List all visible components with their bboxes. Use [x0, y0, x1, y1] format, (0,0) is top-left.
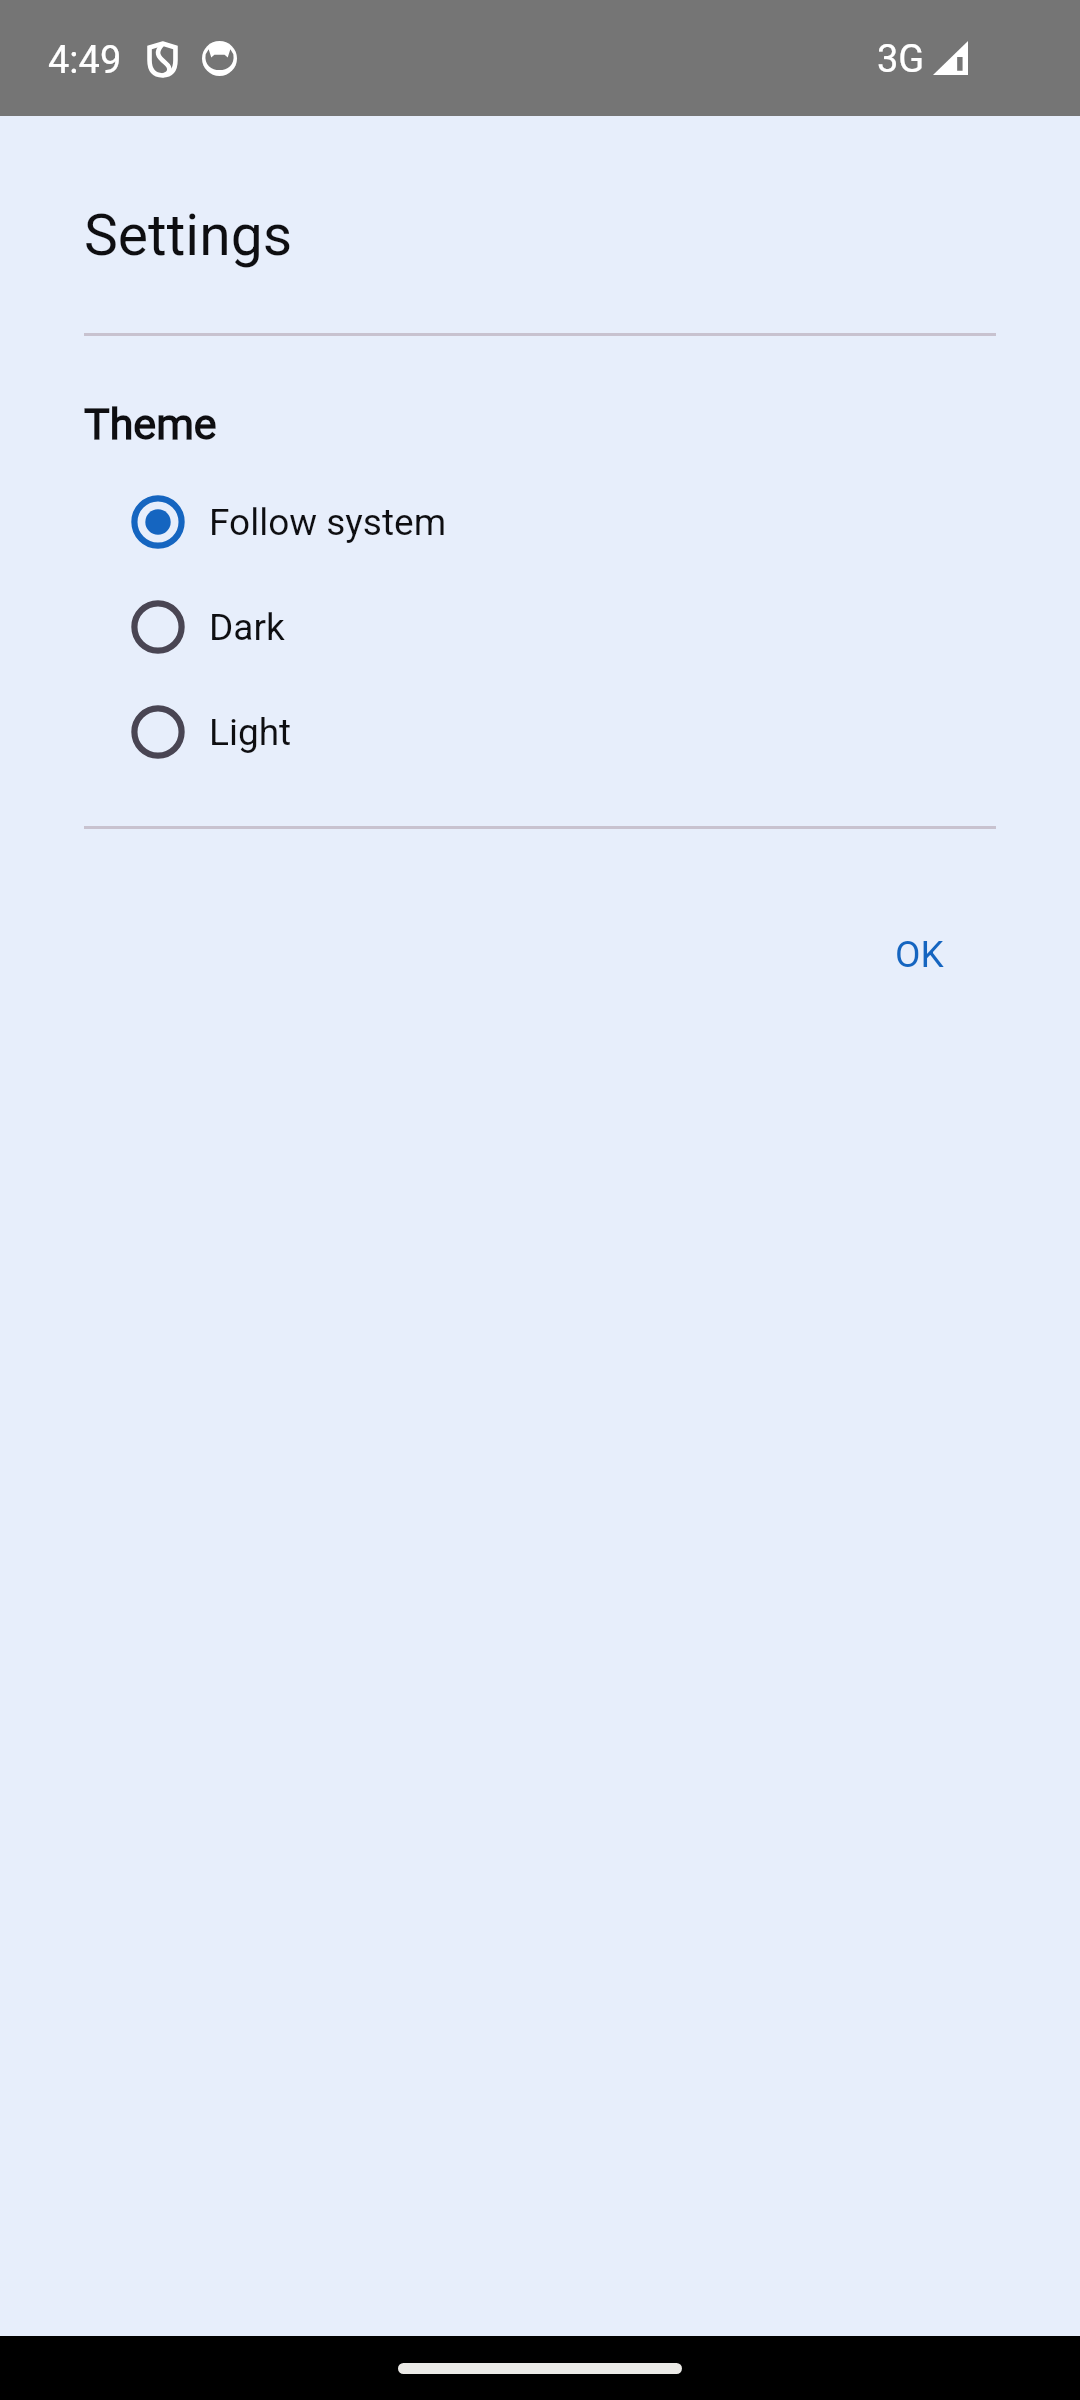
staticText: 3G [877, 37, 925, 82]
staticText: Theme [84, 399, 217, 449]
other: Privacy shield [147, 41, 178, 78]
staticText: Settings [84, 202, 293, 269]
staticText: Follow system [209, 501, 447, 544]
button[interactable]: Light [0, 679, 1080, 784]
other: Mobile signal [933, 41, 968, 75]
button[interactable]: Follow system [0, 469, 1080, 574]
staticText: 4:49 [48, 38, 122, 83]
other: Home [398, 2363, 682, 2374]
staticText: Dark [209, 606, 285, 649]
button[interactable]: OK [873, 911, 966, 998]
other: App notification [202, 41, 237, 76]
staticText: OK [895, 933, 944, 976]
staticText: Light [209, 711, 292, 754]
button[interactable]: Dark [0, 574, 1080, 679]
